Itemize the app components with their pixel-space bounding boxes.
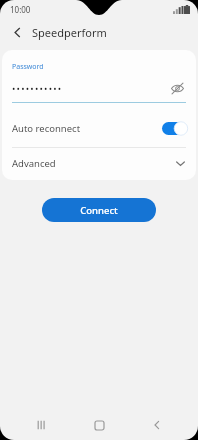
button[interactable]: Password	[2, 50, 196, 103]
staticText: 10:00	[10, 4, 31, 15]
button[interactable]: Back	[6, 21, 28, 43]
button[interactable]: Auto reconnect	[2, 115, 196, 141]
staticText: Speedperform	[32, 25, 107, 40]
button[interactable]: Home	[82, 410, 116, 440]
button[interactable]: Auto reconnect toggle	[162, 122, 186, 135]
button[interactable]: Hide password	[168, 79, 186, 97]
staticText: Auto reconnect	[12, 122, 162, 135]
button[interactable]: Connect	[42, 198, 156, 222]
button[interactable]: Back	[140, 410, 174, 440]
button[interactable]: Recent apps	[24, 410, 58, 440]
button[interactable]: Advanced	[2, 148, 196, 178]
staticText: Advanced	[12, 157, 175, 170]
staticText: •••••••••••	[12, 82, 168, 94]
staticText: Connect	[80, 204, 118, 217]
staticText: Password	[12, 62, 44, 72]
